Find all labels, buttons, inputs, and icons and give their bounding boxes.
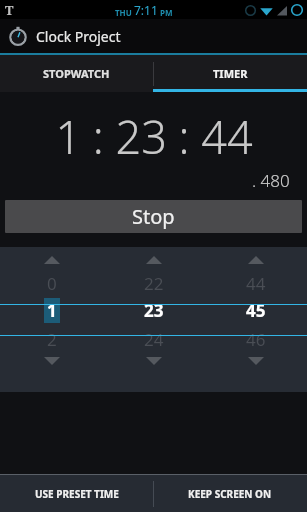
button[interactable]: 1 [44, 295, 60, 326]
button[interactable]: Increment [134, 253, 174, 267]
staticText: THU [115, 7, 134, 18]
staticText: KEEP SCREEN ON [188, 487, 272, 501]
staticText: TIMER [213, 66, 248, 81]
staticText: USE PRESET TIME [35, 487, 119, 501]
staticText: PM [158, 7, 173, 18]
staticText: 2 [47, 328, 57, 351]
button[interactable]: Increment [32, 253, 72, 267]
staticText: 24 [144, 328, 164, 351]
staticText: Clock Project [36, 27, 121, 46]
button[interactable]: Decrement [236, 354, 276, 368]
staticText: 46 [246, 328, 266, 351]
button[interactable]: Clock Project [0, 19, 307, 53]
button[interactable]: TIMER [153, 55, 307, 92]
button[interactable]: Increment [236, 253, 276, 267]
staticText: 7:11 [134, 2, 158, 18]
button[interactable]: 45 [246, 295, 266, 326]
button[interactable]: STOPWATCH [0, 55, 153, 92]
staticText: 45 [246, 299, 266, 322]
staticText: STOPWATCH [43, 66, 110, 81]
staticText: Stop [132, 203, 175, 230]
button[interactable]: USE PRESET TIME [0, 475, 153, 512]
staticText: T [5, 1, 14, 19]
staticText: 22 [144, 272, 164, 295]
button[interactable]: Decrement [32, 354, 72, 368]
button[interactable]: KEEP SCREEN ON [153, 475, 307, 512]
staticText: 44 [246, 272, 266, 295]
button[interactable]: Stop [5, 200, 302, 233]
staticText: 1 [47, 299, 57, 322]
button[interactable]: 23 [144, 295, 164, 326]
staticText: . 480 [252, 169, 290, 192]
button[interactable]: Decrement [134, 354, 174, 368]
staticText: 1 : 23 : 44 [55, 106, 253, 167]
staticText: 0 [47, 272, 57, 295]
staticText: 23 [144, 299, 164, 322]
